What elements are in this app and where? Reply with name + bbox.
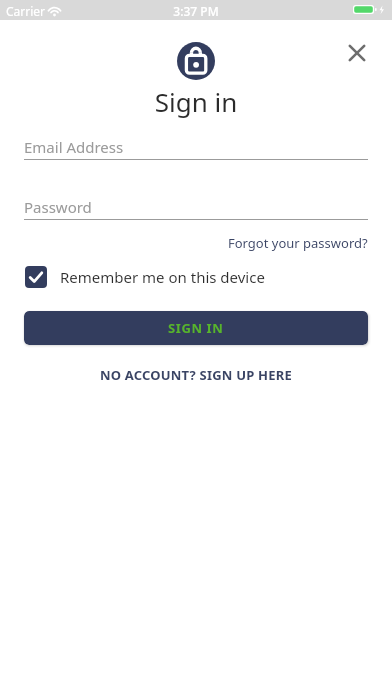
staticText: NO ACCOUNT? SIGN UP HERE bbox=[100, 366, 292, 384]
staticText: 3:37 PM bbox=[0, 3, 392, 19]
button[interactable]: Forgot your password? bbox=[228, 234, 368, 252]
button[interactable]: NO ACCOUNT? SIGN UP HERE bbox=[100, 366, 292, 384]
staticText: Password bbox=[24, 197, 92, 217]
staticText: Forgot your password? bbox=[228, 234, 368, 252]
button[interactable]: SIGN IN bbox=[24, 311, 368, 345]
staticText: Email Address bbox=[24, 137, 124, 157]
staticText: Remember me on this device bbox=[60, 267, 265, 287]
button[interactable]: Remember me on this device bbox=[24, 260, 265, 288]
staticText: Carrier bbox=[6, 3, 46, 19]
button[interactable] bbox=[337, 33, 377, 73]
staticText: SIGN IN bbox=[168, 319, 224, 337]
staticText: Sign in bbox=[0, 84, 392, 119]
